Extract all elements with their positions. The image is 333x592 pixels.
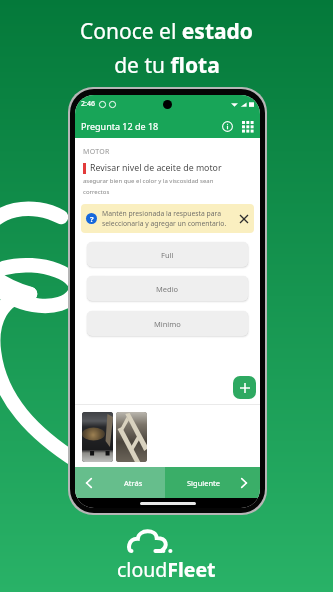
button[interactable]: Siguiente [165,467,260,498]
staticText: Pregunta 12 de 18 [81,120,159,132]
button[interactable]: Foto [82,412,113,462]
staticText: Revisar nivel de aceite de motor [90,162,222,174]
staticText: Full [161,250,174,260]
staticText: Conoce el estado [80,17,253,46]
button[interactable]: Información [218,117,236,135]
staticText: Mantén presionada la respuesta para sele… [102,209,234,228]
staticText: ? [90,214,94,224]
button[interactable]: Medio [87,276,248,301]
staticText: cloudFleet [117,556,216,583]
staticText: Minimo [154,319,181,329]
staticText: de tu flota [114,51,220,80]
button[interactable]: Minimo [87,311,248,336]
button[interactable]: Menú [238,117,256,135]
staticText: Atrás [124,478,143,488]
button[interactable]: Atrás [75,467,165,498]
staticText: Medio [156,284,179,294]
button[interactable]: Foto [116,412,147,462]
staticText: Siguiente [187,478,221,488]
staticText: asegurar bien que el color y la viscosid… [83,177,217,196]
staticText: MOTOR [83,147,110,157]
button[interactable]: Agregar [233,376,256,399]
button[interactable]: Full [87,242,248,267]
button[interactable]: Cerrar [237,212,250,225]
staticText: 2:46 [81,99,95,109]
